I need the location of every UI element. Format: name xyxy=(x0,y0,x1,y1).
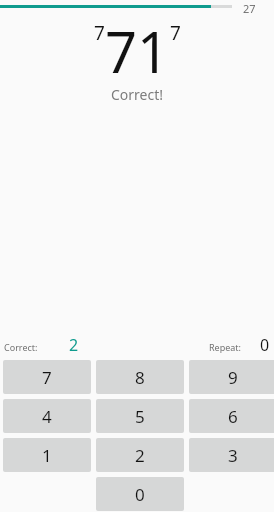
button[interactable]: 5 xyxy=(96,399,184,433)
staticText: 7 xyxy=(94,20,105,46)
staticText: 7 xyxy=(42,366,52,389)
staticText: 2 xyxy=(69,334,79,356)
staticText: 27 xyxy=(243,1,256,16)
staticText: 6 xyxy=(228,405,238,428)
button[interactable]: 4 xyxy=(3,399,91,433)
button[interactable]: 3 xyxy=(189,438,274,472)
staticText: 0 xyxy=(260,334,270,356)
button[interactable]: 1 xyxy=(3,438,91,472)
staticText: 71 xyxy=(105,13,170,89)
staticText: 3 xyxy=(228,444,238,467)
staticText: 2 xyxy=(135,444,145,467)
staticText: 5 xyxy=(135,405,145,428)
staticText: 7 xyxy=(170,20,181,46)
staticText: 0 xyxy=(135,483,145,506)
button[interactable]: 9 xyxy=(189,360,274,394)
staticText: 8 xyxy=(135,366,145,389)
staticText: 4 xyxy=(42,405,52,428)
button[interactable]: 7 xyxy=(3,360,91,394)
staticText: 9 xyxy=(228,366,238,389)
staticText: Repeat: xyxy=(209,341,241,353)
staticText: Correct! xyxy=(0,85,274,104)
staticText: 1 xyxy=(42,444,52,467)
staticText: Correct: xyxy=(4,341,38,353)
button[interactable]: 2 xyxy=(96,438,184,472)
button[interactable]: 8 xyxy=(96,360,184,394)
button[interactable]: 0 xyxy=(96,477,184,511)
button[interactable]: 6 xyxy=(189,399,274,433)
